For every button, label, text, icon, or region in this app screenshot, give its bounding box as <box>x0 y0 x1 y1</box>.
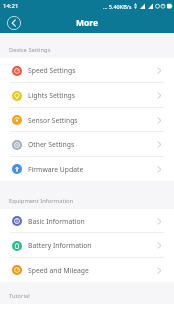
staticText: Basic Information <box>28 217 85 226</box>
staticText: Battery Information <box>28 241 92 250</box>
staticText: Speed Settings <box>28 66 76 75</box>
staticText: Firmware Update <box>28 165 84 174</box>
staticText: More <box>76 17 99 29</box>
staticText: ... 5.40KB/s <box>103 3 132 10</box>
button[interactable]: Firmware Update <box>0 157 174 181</box>
button[interactable]: Speed and Mileage <box>0 258 174 282</box>
staticText: Equipment Information <box>9 197 74 205</box>
staticText: Lights Settings <box>28 91 76 100</box>
staticText: Speed and Mileage <box>28 266 89 275</box>
button[interactable]: Basic Information <box>0 209 174 233</box>
button[interactable]: Sensor Settings <box>0 108 174 132</box>
button[interactable]: Lights Settings <box>0 83 174 108</box>
button[interactable]: Speed Settings <box>0 58 174 83</box>
staticText: Other Settings <box>28 140 75 149</box>
staticText: Tutorial <box>9 292 30 300</box>
staticText: 14:21 <box>3 2 19 10</box>
button[interactable] <box>7 16 21 30</box>
button[interactable]: Battery Information <box>0 233 174 258</box>
staticText: Sensor Settings <box>28 116 78 125</box>
staticText: Device Settings <box>9 46 51 54</box>
button[interactable]: Other Settings <box>0 132 174 157</box>
